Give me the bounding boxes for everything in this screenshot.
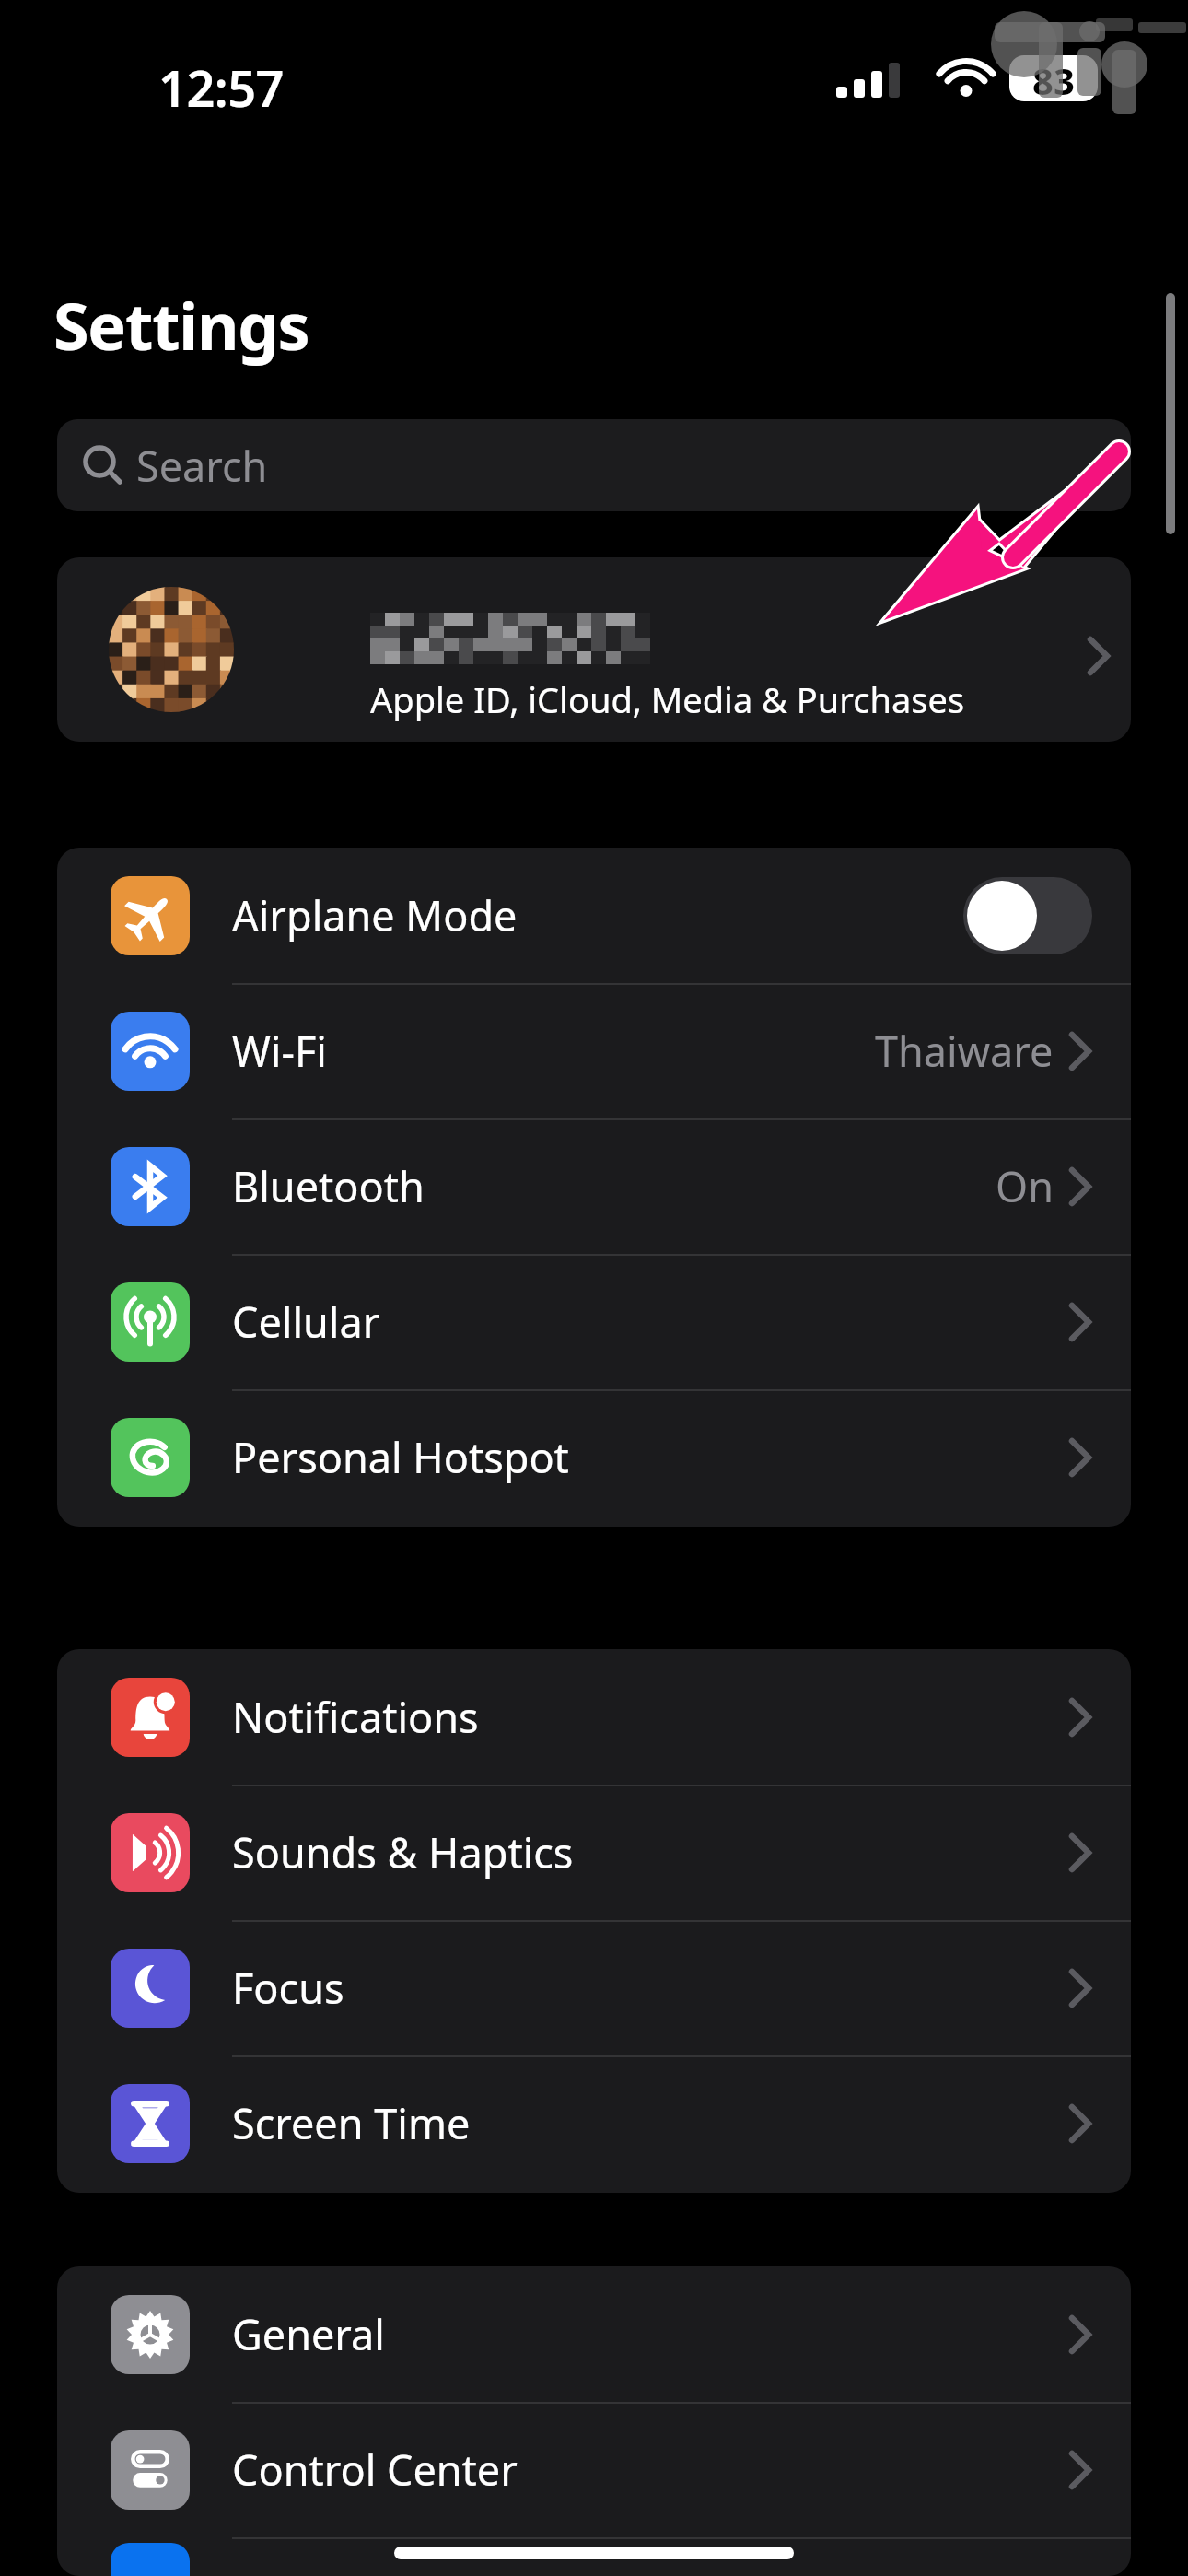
- other: Airplane Mode toggle: [963, 877, 1092, 954]
- button[interactable]: Personal Hotspot: [57, 1389, 1131, 1525]
- staticText: Apple ID, iCloud, Media & Purchases: [370, 675, 965, 723]
- staticText: Notifications: [232, 1689, 479, 1745]
- staticText: Focus: [232, 1960, 344, 2016]
- staticText: 12:57: [158, 53, 284, 122]
- button[interactable]: Search: [57, 419, 1131, 511]
- staticText: Screen Time: [232, 2095, 471, 2151]
- button[interactable]: Wi-Fi: [57, 983, 1131, 1118]
- button[interactable]: Airplane Mode: [57, 848, 1131, 983]
- staticText: 83: [1032, 55, 1075, 101]
- staticText: Search: [136, 438, 268, 494]
- staticText: Wi-Fi: [232, 1023, 327, 1079]
- staticText: General: [232, 2306, 385, 2362]
- staticText: Airplane Mode: [232, 887, 518, 943]
- button[interactable]: Apple ID, iCloud, Media & Purchases: [57, 557, 1131, 742]
- staticText: Personal Hotspot: [232, 1429, 569, 1485]
- button[interactable]: General: [57, 2266, 1131, 2402]
- staticText: Control Center: [232, 2441, 518, 2498]
- button[interactable]: Control Center: [57, 2402, 1131, 2537]
- staticText: Cellular: [232, 1294, 380, 1350]
- button[interactable]: Notifications: [57, 1649, 1131, 1785]
- button[interactable]: Screen Time: [57, 2055, 1131, 2191]
- staticText: Sounds & Haptics: [232, 1824, 574, 1880]
- staticText: Bluetooth: [232, 1158, 425, 1214]
- staticText: On: [996, 1158, 1054, 1214]
- button[interactable]: Focus: [57, 1920, 1131, 2055]
- button[interactable]: Cellular: [57, 1254, 1131, 1389]
- staticText: Settings: [53, 281, 309, 369]
- button[interactable]: Bluetooth: [57, 1118, 1131, 1254]
- staticText: Thaiware: [875, 1023, 1054, 1079]
- button[interactable]: Sounds & Haptics: [57, 1785, 1131, 1920]
